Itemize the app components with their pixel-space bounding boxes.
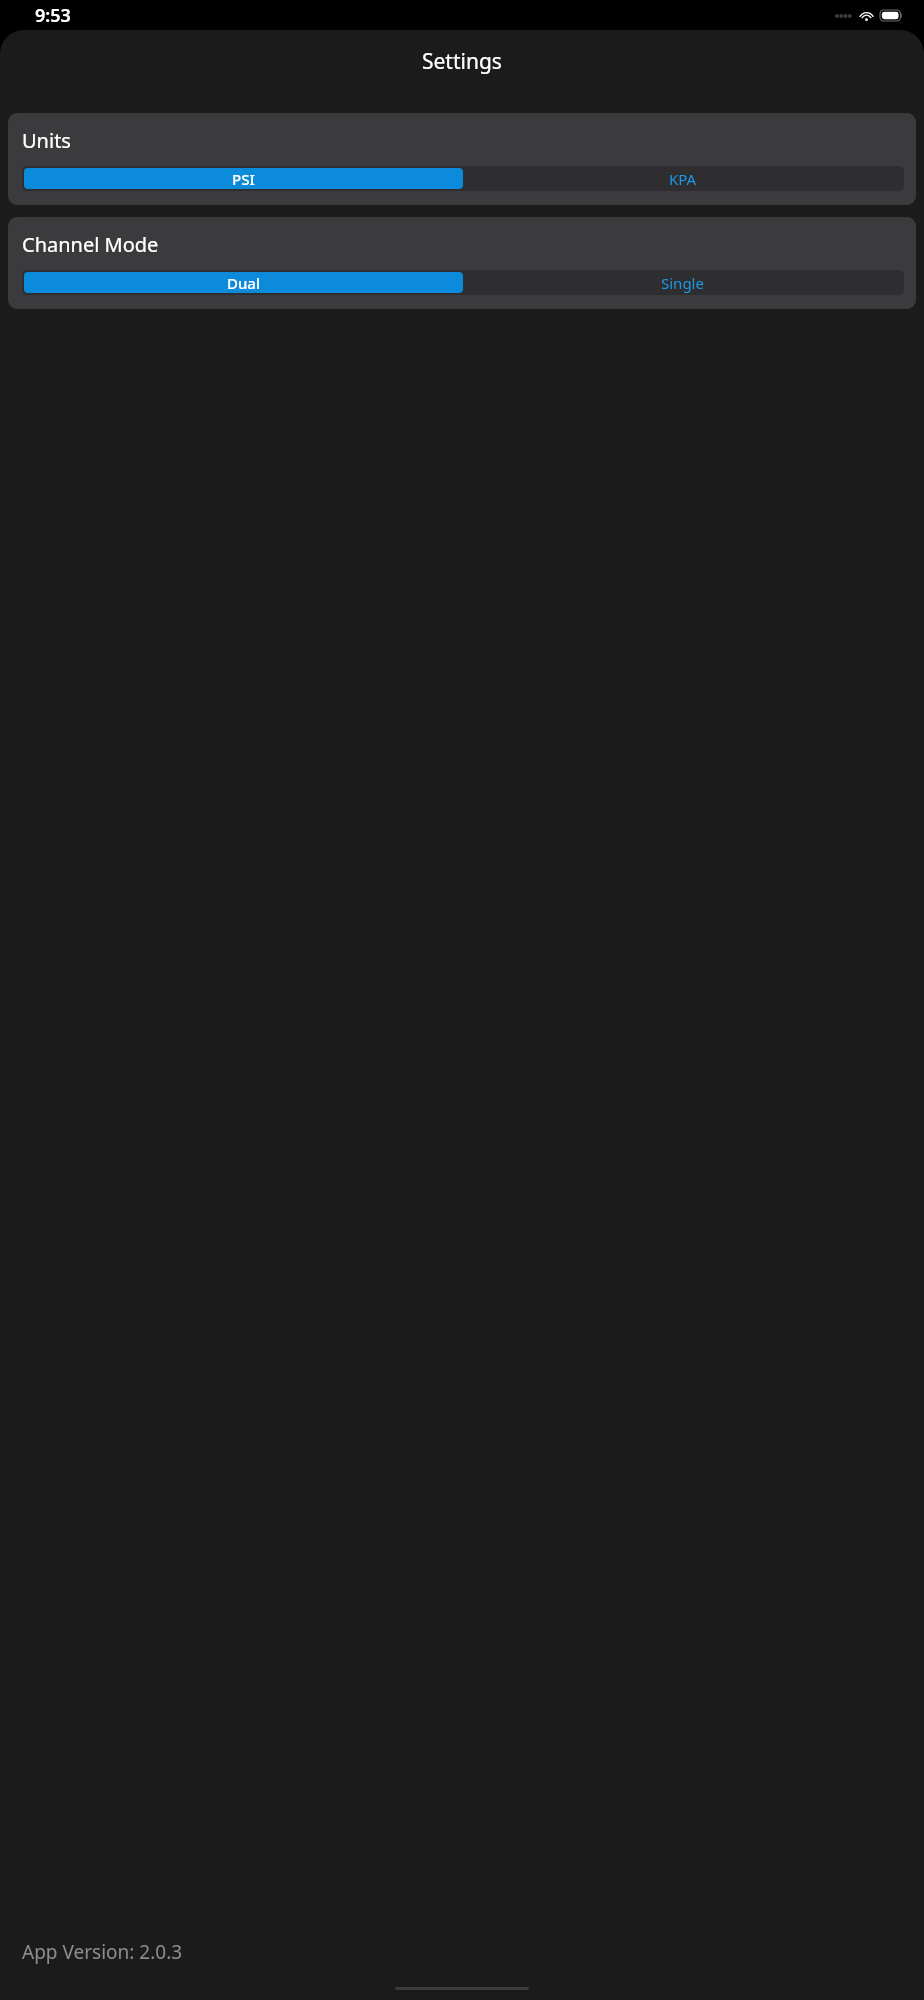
staticText: 9:53 bbox=[35, 3, 71, 28]
staticText: PSI bbox=[232, 169, 255, 189]
staticText: Settings bbox=[422, 47, 502, 76]
button[interactable]: KPA bbox=[463, 168, 902, 189]
staticText: Channel Mode bbox=[22, 231, 159, 258]
other: Wi-Fi bbox=[859, 10, 874, 21]
button[interactable]: PSI bbox=[24, 168, 463, 189]
staticText: Units bbox=[22, 127, 71, 154]
other: Battery bbox=[880, 10, 902, 21]
button[interactable]: Single bbox=[463, 272, 902, 293]
staticText: KPA bbox=[669, 169, 697, 189]
staticText: Single bbox=[661, 273, 704, 293]
staticText: Dual bbox=[227, 273, 261, 293]
button[interactable]: Dual bbox=[24, 272, 463, 293]
staticText: App Version: 2.0.3 bbox=[22, 1939, 183, 1965]
